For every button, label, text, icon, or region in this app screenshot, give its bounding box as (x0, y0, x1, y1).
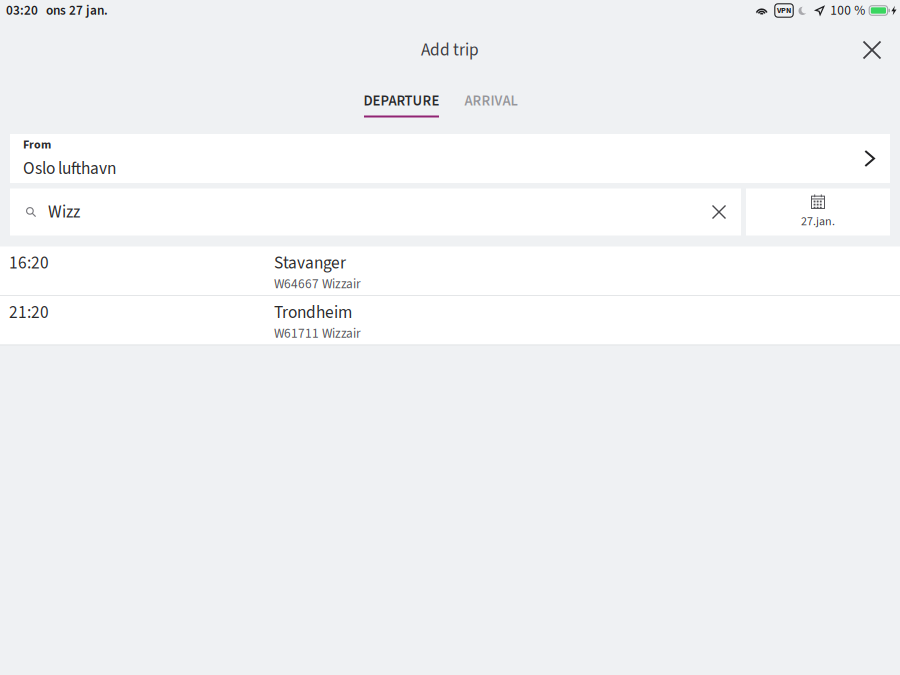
staticText: Wizz (48, 200, 80, 224)
staticText: DEPARTURE (363, 91, 439, 111)
staticText: Stavanger (274, 251, 346, 275)
button[interactable]: DEPARTURE (364, 92, 439, 117)
button[interactable]: From (10, 134, 890, 183)
staticText: ARRIVAL (464, 91, 517, 111)
button[interactable]: 21:20 (0, 296, 900, 344)
button[interactable]: Clear search (702, 195, 736, 229)
staticText: ons 27 jan. (46, 1, 108, 20)
staticText: W61711 Wizzair (274, 324, 361, 343)
staticText: From (23, 136, 51, 153)
staticText: 03:20 (6, 1, 38, 20)
staticText: VPN (777, 5, 791, 16)
staticText: Oslo lufthavn (23, 156, 116, 181)
button[interactable]: 27.jan. (746, 188, 890, 235)
staticText: 16:20 (9, 251, 49, 275)
staticText: Add trip (421, 38, 479, 62)
staticText: 27.jan. (801, 213, 835, 230)
staticText: 21:20 (9, 300, 49, 325)
button[interactable]: 16:20 (0, 246, 900, 295)
staticText: W64667 Wizzair (274, 274, 361, 293)
staticText: Trondheim (274, 300, 352, 325)
staticText: 100 % (830, 1, 865, 20)
button[interactable]: ARRIVAL (464, 92, 518, 117)
button[interactable]: Close (853, 31, 891, 69)
